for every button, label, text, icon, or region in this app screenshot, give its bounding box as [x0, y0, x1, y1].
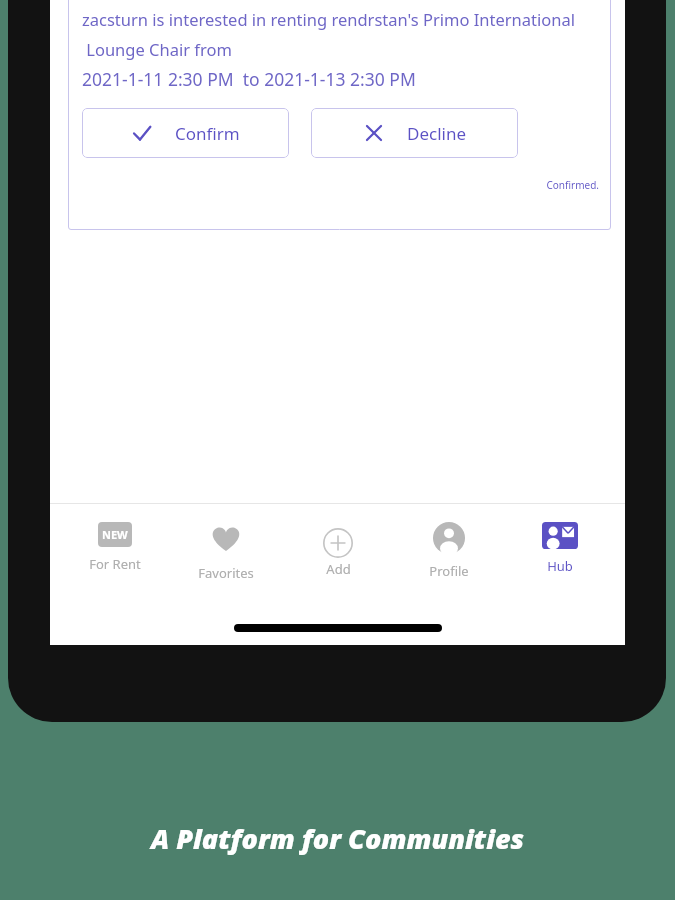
staticText: Decline [407, 122, 467, 145]
staticText: NEW [102, 527, 128, 542]
other: For Rent [98, 522, 132, 547]
staticText: zacsturn is interested in renting rendrs… [82, 8, 575, 30]
staticText: Profile [429, 562, 469, 580]
staticText: For Rent [89, 555, 141, 573]
other: Profile [433, 522, 465, 554]
button[interactable]: Profile [403, 504, 495, 580]
staticText: Lounge Chair from [82, 38, 232, 60]
button[interactable]: Decline [311, 108, 518, 158]
button[interactable]: Add [292, 504, 384, 578]
button[interactable]: Confirm [82, 108, 289, 158]
other: Hub [542, 522, 578, 549]
button[interactable]: Favorites [180, 504, 272, 582]
staticText: Confirmed. [68, 178, 599, 192]
other: Add [323, 528, 353, 558]
button[interactable]: For Rent [69, 504, 161, 573]
other: Favorites [209, 522, 243, 556]
staticText: Favorites [198, 564, 254, 582]
staticText: Hub [547, 557, 573, 575]
button[interactable]: Hub [514, 504, 606, 575]
staticText: 2021-1-11 2:30 PM to 2021-1-13 2:30 PM [82, 67, 416, 91]
staticText: Confirm [175, 122, 240, 145]
staticText: Add [326, 560, 351, 578]
staticText: A Platform for Communities [0, 820, 675, 857]
